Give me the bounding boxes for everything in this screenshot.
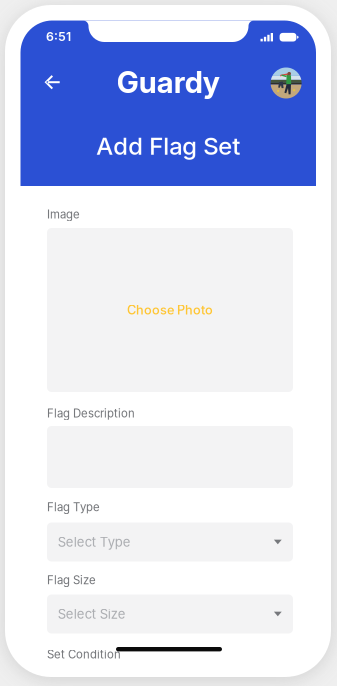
staticText: Flag Type xyxy=(47,500,100,514)
staticText: Select Size xyxy=(58,606,126,622)
staticText: Guardy xyxy=(117,64,220,100)
staticText: 6:51 xyxy=(46,29,71,44)
button[interactable]: Profile xyxy=(265,62,307,104)
staticText: Image xyxy=(47,207,80,221)
button[interactable]: Select Type xyxy=(47,522,293,561)
staticText: Flag Size xyxy=(47,573,96,587)
staticText: Add Flag Set xyxy=(96,131,240,160)
staticText: Choose Photo xyxy=(127,302,213,318)
button[interactable]: Choose Photo xyxy=(47,228,293,392)
staticText: Select Type xyxy=(58,534,131,550)
button[interactable]: Select Size xyxy=(47,594,293,633)
staticText: Set Condition xyxy=(47,647,121,661)
button[interactable]: Back xyxy=(31,61,73,103)
staticText: Flag Description xyxy=(47,406,135,420)
